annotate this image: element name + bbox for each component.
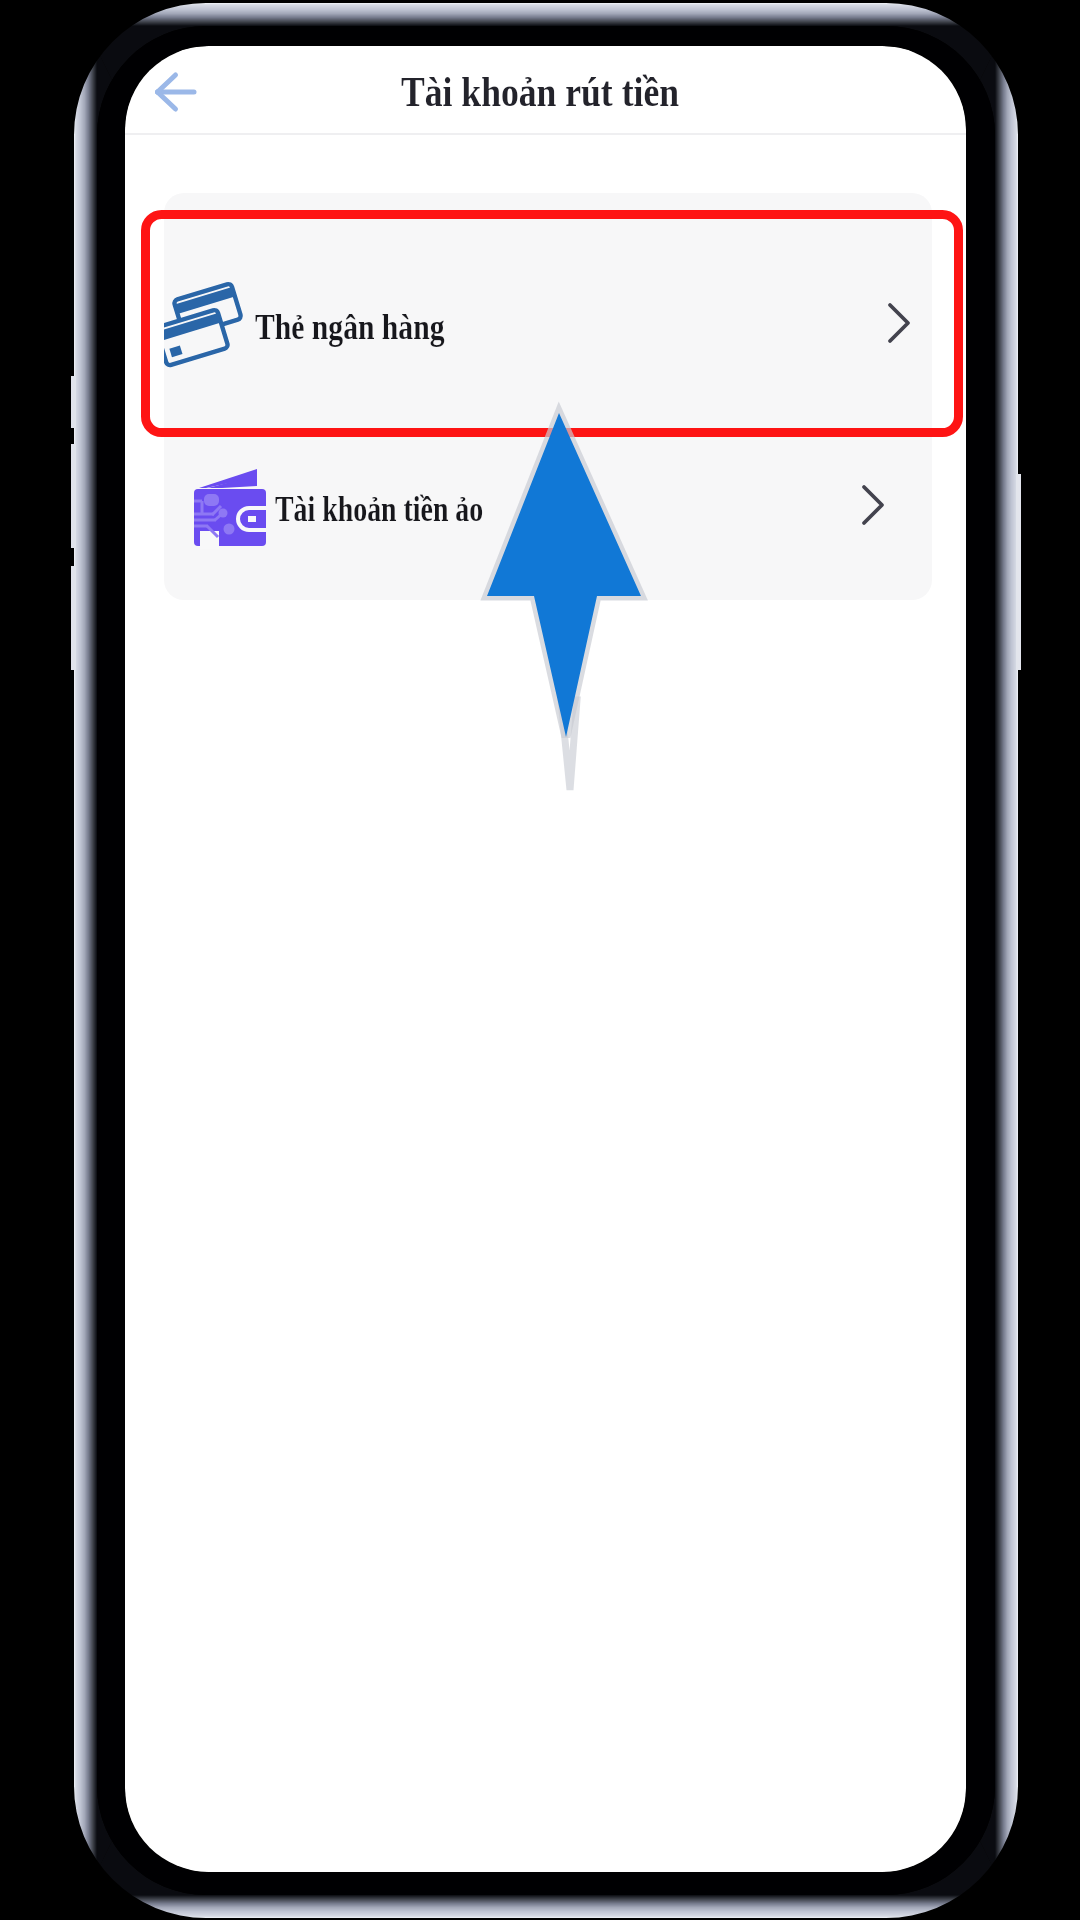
staticText: Tài khoản tiền ảo [275,490,484,529]
button[interactable]: Tài khoản tiền ảo [164,418,932,600]
button[interactable]: Thẻ ngân hàng [164,236,932,418]
staticText: Thẻ ngân hàng [255,308,445,347]
button[interactable]: Back [135,61,209,135]
staticText: Tài khoản rút tiền [401,68,679,116]
